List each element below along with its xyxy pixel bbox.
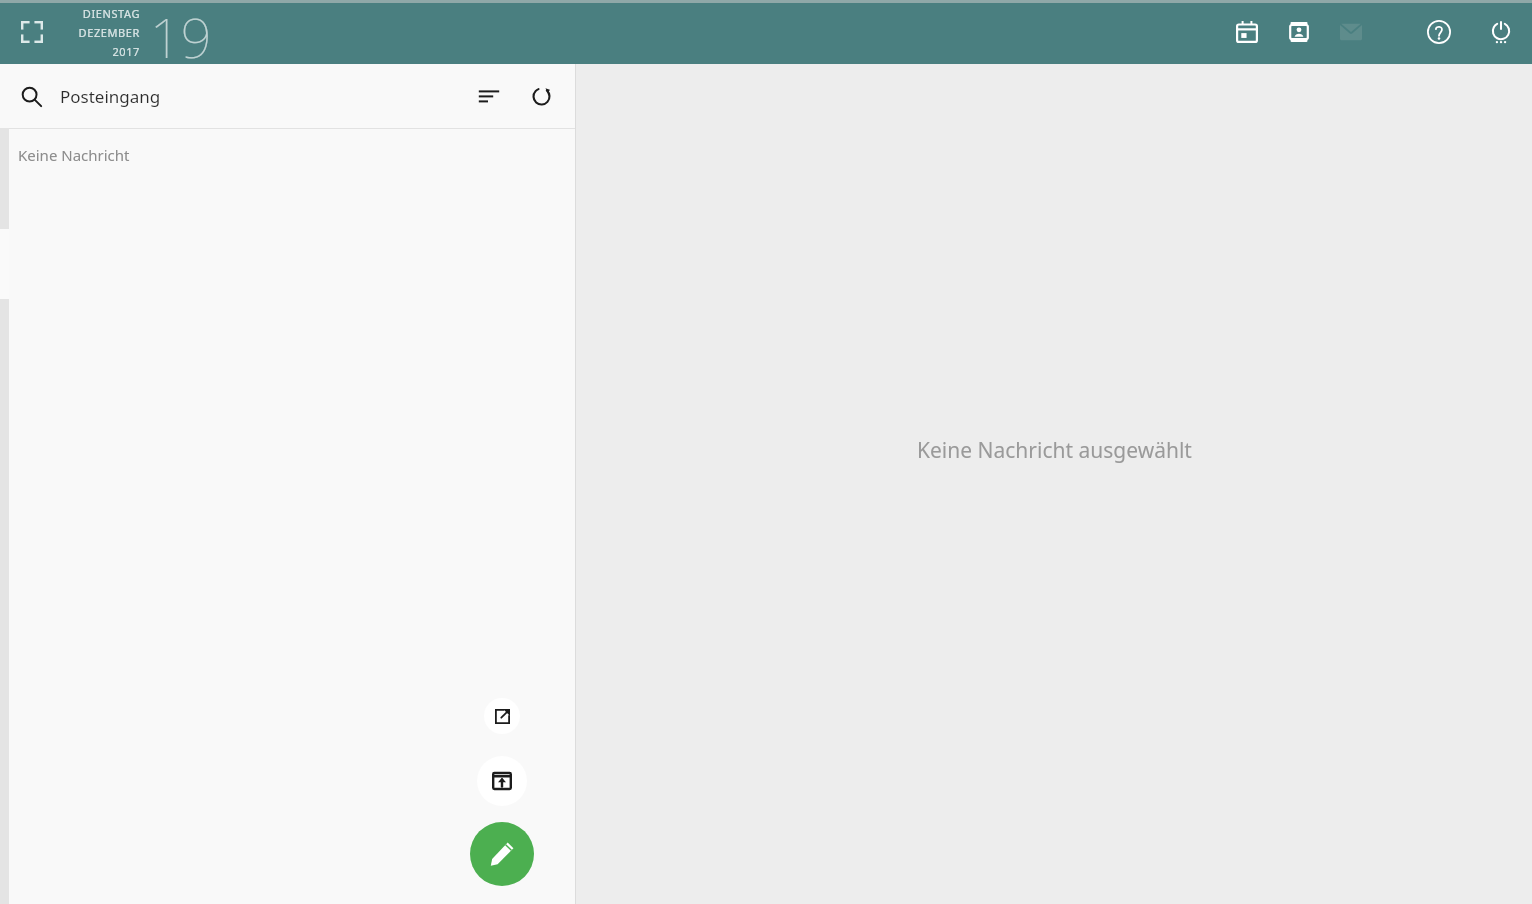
button[interactable]: Posteingang — [0, 64, 576, 128]
button[interactable]: Abmelden — [1480, 11, 1522, 53]
staticText: Keine Nachricht ausgewählt — [917, 436, 1192, 465]
staticText: DIENSTAG — [82, 6, 140, 21]
staticText: 19 — [150, 0, 212, 64]
button[interactable]: Sortieren — [468, 75, 510, 117]
staticText: DEZEMBER — [78, 25, 140, 40]
button[interactable]: In neuem Fenster öffnen — [484, 698, 520, 734]
button[interactable]: Kalender — [1226, 11, 1268, 53]
staticText: 2017 — [112, 44, 140, 59]
button[interactable]: Wiederherstellen — [477, 756, 527, 806]
staticText: Posteingang — [60, 85, 161, 108]
button[interactable]: Kontakte — [1278, 11, 1320, 53]
button[interactable]: Hilfe — [1418, 11, 1460, 53]
button[interactable]: E-Mail — [1330, 11, 1372, 53]
button[interactable]: Vollbild — [12, 12, 52, 52]
staticText: Keine Nachricht — [18, 145, 130, 165]
button[interactable]: Aktualisieren — [520, 75, 562, 117]
button[interactable]: Neue Nachricht verfassen — [470, 822, 534, 886]
